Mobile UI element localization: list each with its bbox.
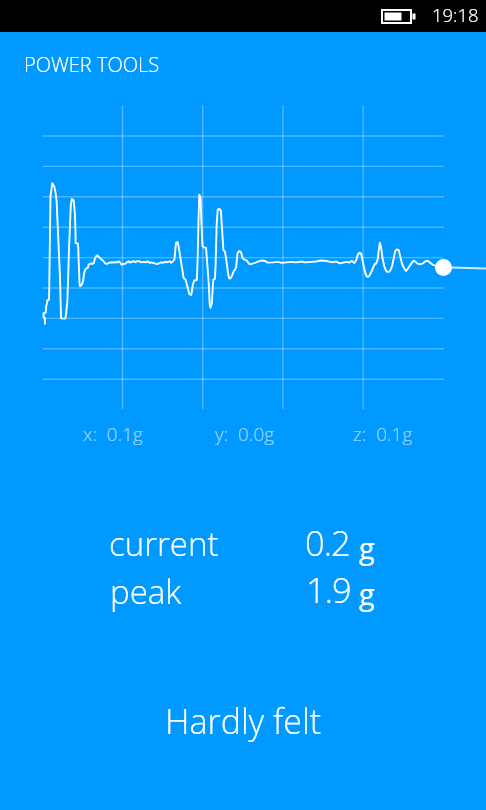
button[interactable]: Accelerometer chart	[0, 96, 486, 416]
button[interactable]: current	[100, 516, 386, 562]
staticText: z: 0.1g	[353, 421, 413, 447]
staticText: Hardly felt	[0, 698, 486, 744]
button[interactable]: peak	[100, 562, 386, 608]
staticText: peak	[110, 569, 182, 614]
staticText: 19:18	[432, 2, 479, 27]
staticText: 1.9	[306, 566, 351, 612]
staticText: POWER TOOLS	[24, 51, 160, 78]
button[interactable]: y: 0.0g	[207, 414, 283, 448]
staticText: current	[109, 521, 219, 566]
staticText: 0.2	[305, 519, 350, 565]
button[interactable]: x: 0.1g	[75, 414, 151, 448]
staticText: x: 0.1g	[83, 421, 143, 447]
staticText: g	[359, 528, 375, 567]
button[interactable]: z: 0.1g	[345, 414, 421, 448]
staticText: y: 0.0g	[215, 421, 275, 447]
other: Battery	[381, 9, 416, 25]
button[interactable]: Hardly felt	[0, 692, 486, 744]
staticText: g	[359, 574, 375, 613]
button[interactable]: POWER TOOLS	[10, 43, 210, 77]
